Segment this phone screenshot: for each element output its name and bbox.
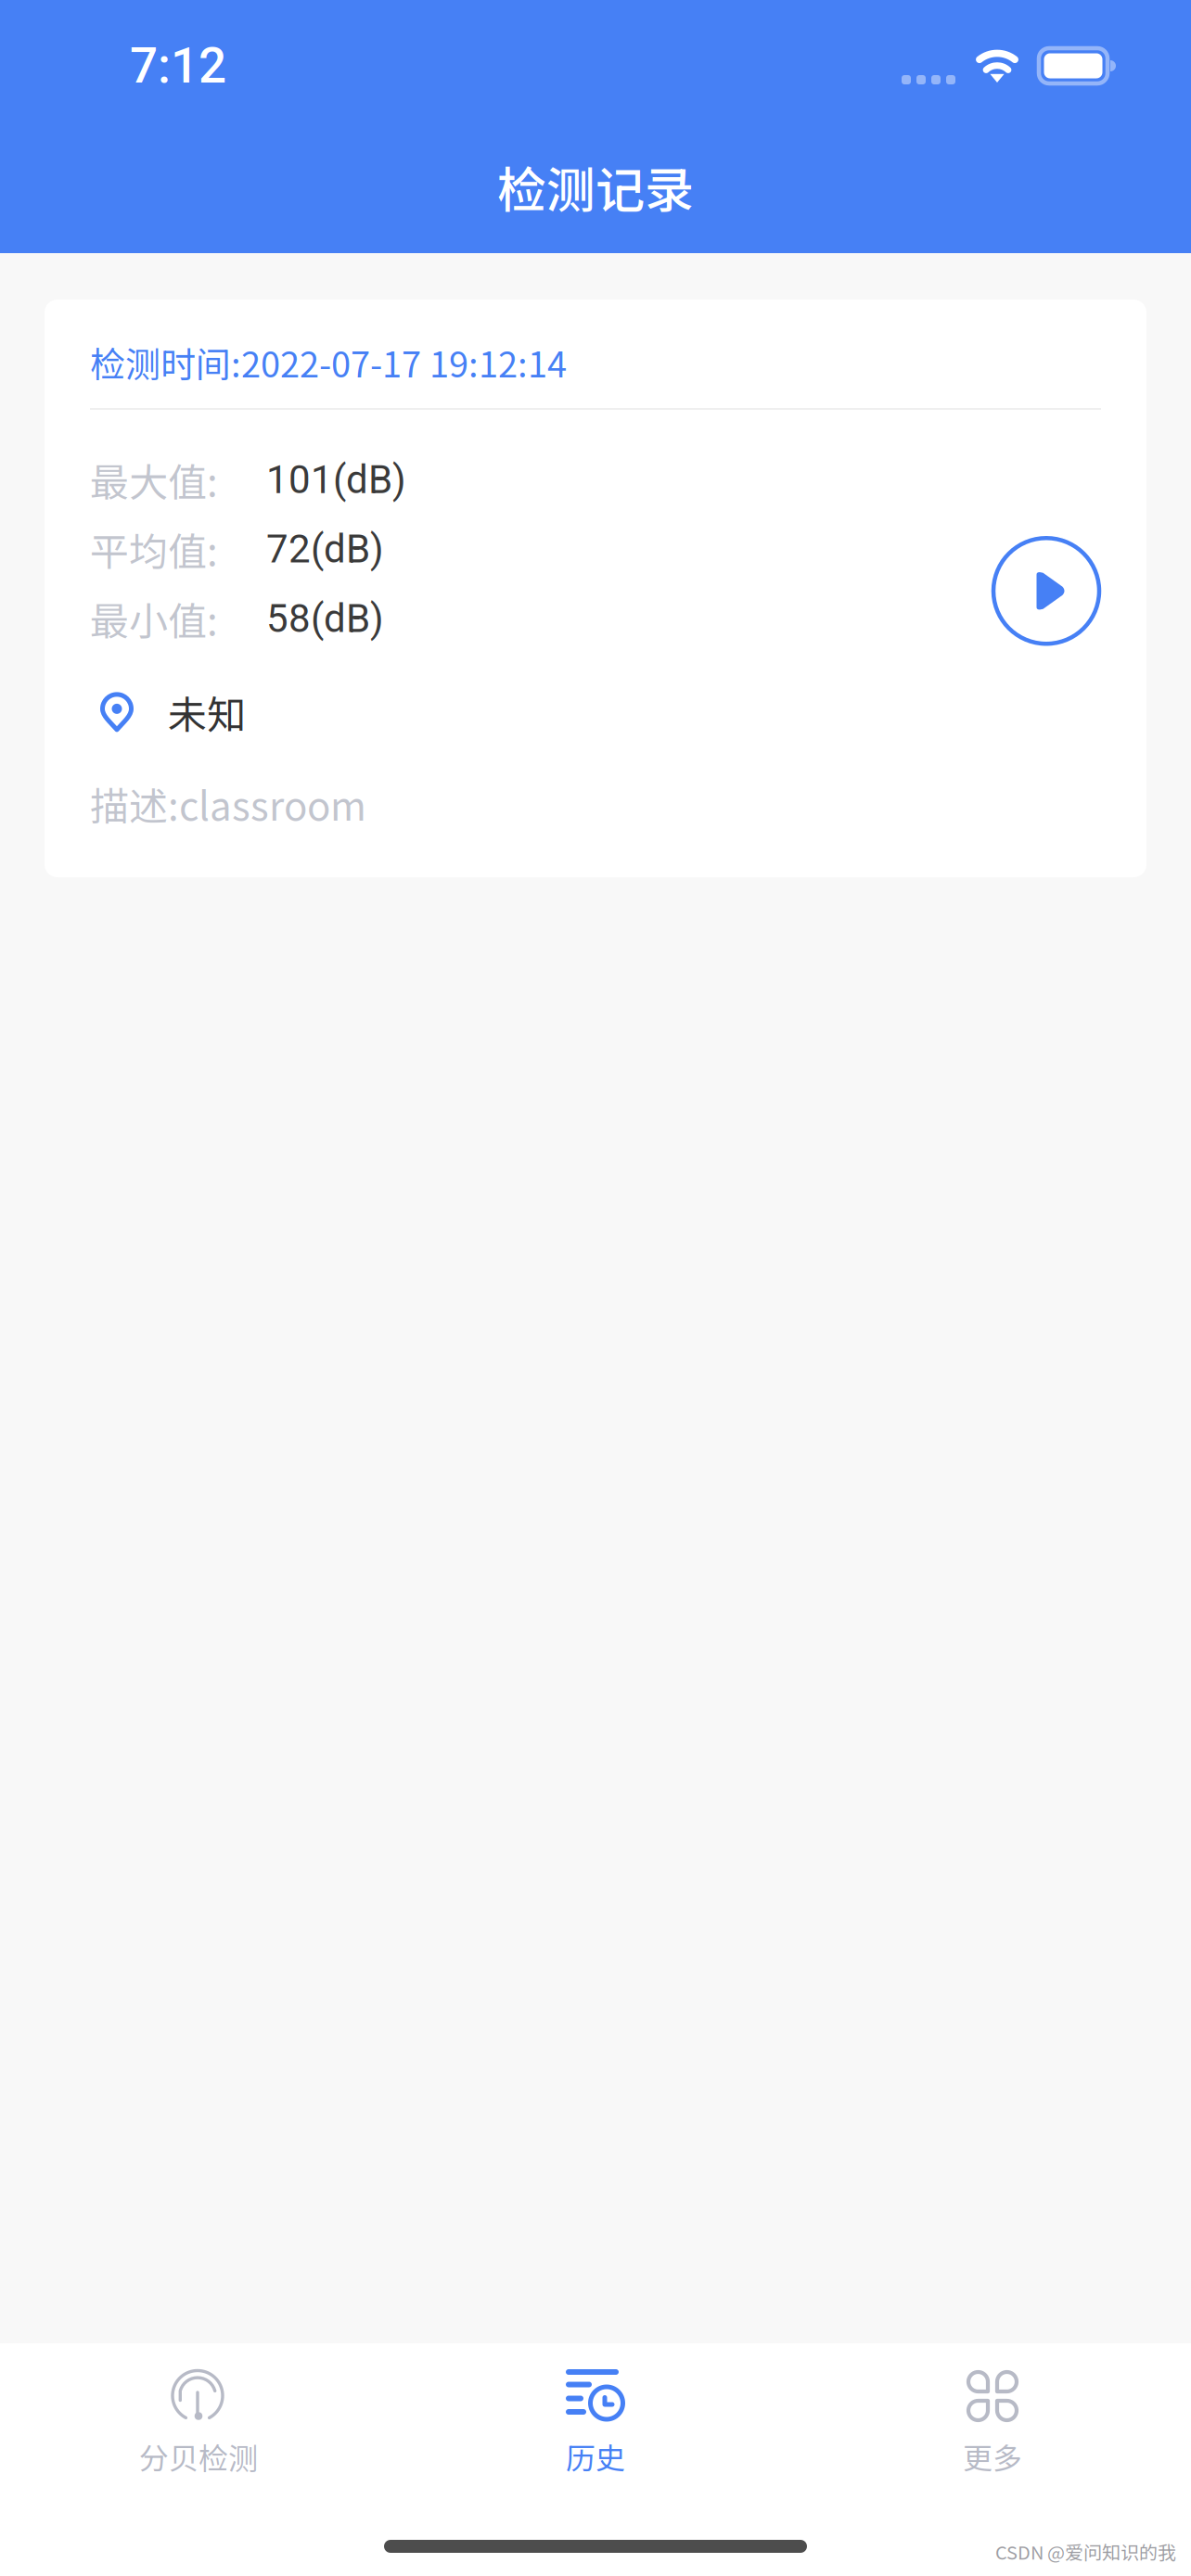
staticText: 历史 <box>566 2435 625 2478</box>
staticText: 101(dB) <box>266 457 406 503</box>
staticText: 平均值: <box>90 521 218 577</box>
staticText: 58(dB) <box>266 596 384 641</box>
button[interactable]: 历史 <box>397 2369 794 2478</box>
staticText: 72(dB) <box>266 526 384 572</box>
button[interactable]: Play recording <box>969 488 1092 610</box>
staticText: 更多 <box>963 2435 1022 2478</box>
staticText: 分贝检测 <box>139 2435 258 2478</box>
staticText: 7:12 <box>130 37 226 95</box>
button[interactable]: 更多 <box>794 2369 1191 2478</box>
staticText: CSDN @爱问知识的我 <box>995 2538 1176 2565</box>
staticText: 描述:classroom <box>90 775 366 832</box>
staticText: 检测记录 <box>497 151 694 222</box>
staticText: 未知 <box>168 684 246 740</box>
staticText: 最大值: <box>90 452 218 508</box>
staticText: 检测时间:2022-07-17 19:12:14 <box>90 337 567 388</box>
staticText: 最小值: <box>90 590 218 647</box>
button[interactable]: 分贝检测 <box>0 2369 397 2478</box>
